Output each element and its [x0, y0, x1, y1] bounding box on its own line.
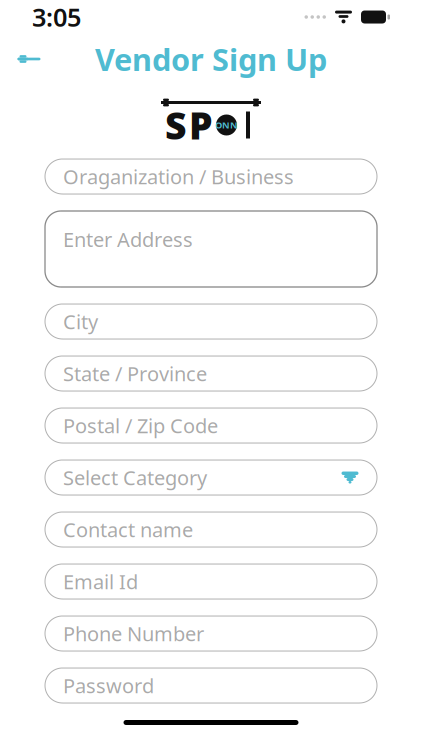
- staticText: City: [63, 308, 98, 335]
- staticText: Oraganization / Business: [63, 163, 294, 190]
- staticText: ONN: [215, 119, 238, 131]
- staticText: Postal / Zip Code: [63, 412, 218, 439]
- staticText: S: [165, 100, 187, 150]
- button[interactable]: Phone Number: [45, 616, 377, 651]
- staticText: Contact name: [63, 516, 193, 543]
- button[interactable]: Enter Address: [45, 211, 377, 287]
- staticText: Enter Address: [63, 226, 193, 253]
- button[interactable]: City: [45, 304, 377, 339]
- button[interactable]: State / Province: [45, 356, 377, 391]
- button[interactable]: Password: [45, 668, 377, 703]
- button[interactable]: Select Category: [45, 460, 377, 495]
- button[interactable]: Oraganization / Business: [45, 159, 377, 194]
- button[interactable]: Postal / Zip Code: [45, 408, 377, 443]
- staticText: P: [189, 100, 213, 150]
- button[interactable]: Contact name: [45, 512, 377, 547]
- staticText: State / Province: [63, 360, 207, 387]
- button[interactable]: Back: [6, 39, 52, 79]
- staticText: Email Id: [63, 568, 138, 595]
- staticText: Password: [63, 672, 154, 699]
- staticText: Vendor Sign Up: [95, 39, 327, 79]
- staticText: 3:05: [32, 0, 81, 34]
- staticText: Phone Number: [63, 620, 204, 647]
- staticText: Select Category: [63, 464, 207, 491]
- button[interactable]: Email Id: [45, 564, 377, 599]
